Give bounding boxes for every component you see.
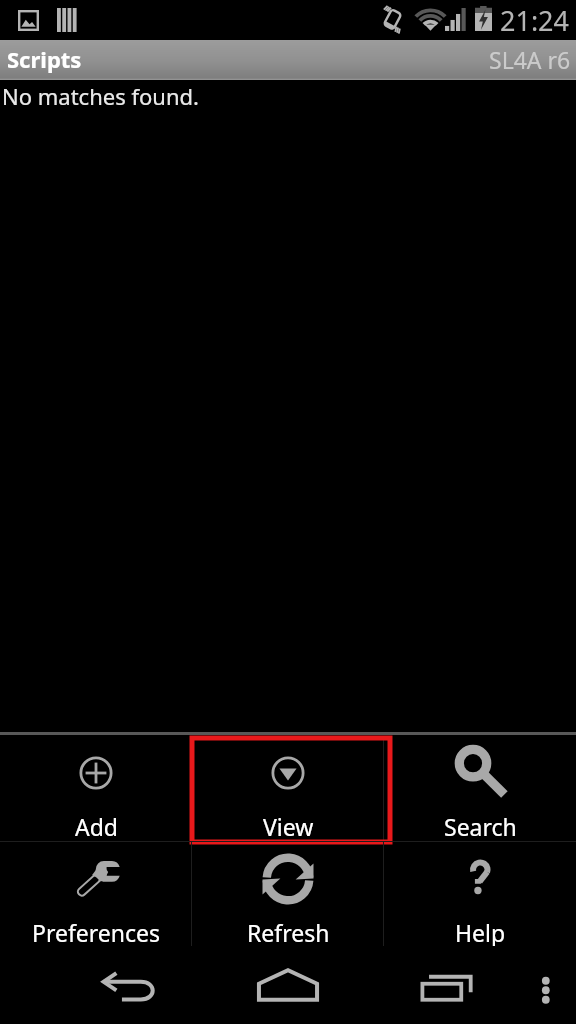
staticText: View <box>263 811 314 841</box>
button[interactable]: Back <box>99 969 161 1009</box>
button[interactable]: Refresh <box>192 842 384 946</box>
button[interactable]: View <box>192 736 384 841</box>
button[interactable]: Home <box>253 961 323 1011</box>
button[interactable]: Add <box>0 736 192 841</box>
button[interactable]: Preferences <box>0 842 192 946</box>
button[interactable]: More options <box>524 961 564 1011</box>
staticText: Help <box>455 917 506 946</box>
staticText: 21:24 <box>500 2 570 39</box>
button[interactable]: Recent apps <box>414 961 484 1011</box>
staticText: No matches found. <box>2 81 199 111</box>
button[interactable]: Search <box>384 736 576 841</box>
staticText: Refresh <box>247 917 330 946</box>
staticText: SL4A r6 <box>489 44 571 75</box>
button[interactable]: Help <box>384 842 576 946</box>
staticText: Add <box>75 811 118 841</box>
staticText: Preferences <box>32 917 161 946</box>
staticText: Scripts <box>7 44 82 74</box>
staticText: Search <box>444 811 517 841</box>
